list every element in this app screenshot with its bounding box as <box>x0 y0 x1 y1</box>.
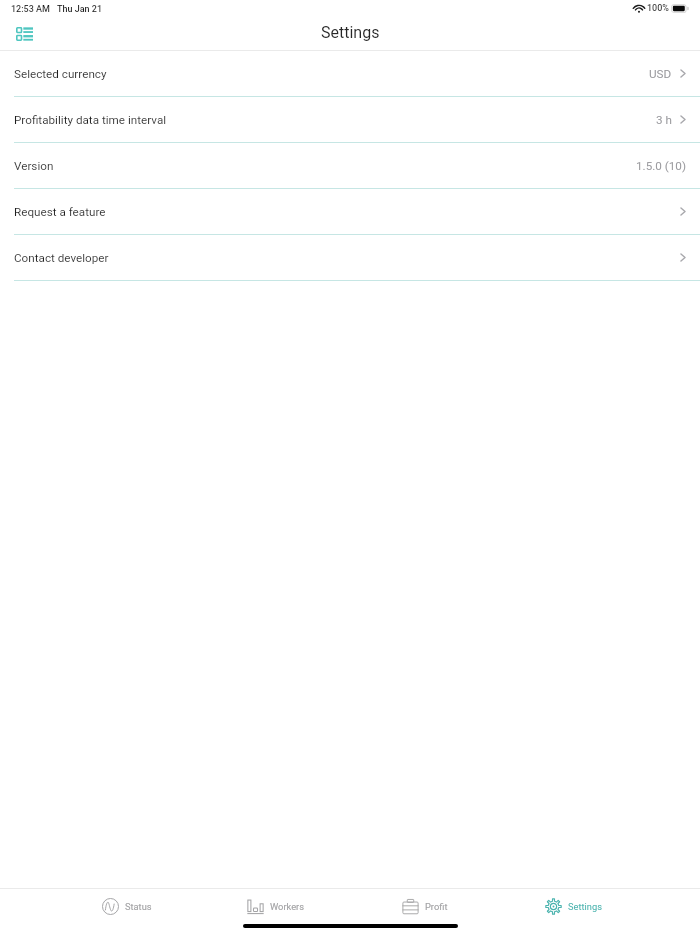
staticText: 1.5.0 (10) <box>636 159 686 173</box>
button[interactable]: Profit <box>350 889 499 924</box>
staticText: Settings <box>321 23 380 42</box>
button[interactable]: Status <box>52 889 201 924</box>
staticText: Workers <box>270 901 305 912</box>
staticText: Profitability data time interval <box>14 113 167 127</box>
button[interactable]: List view <box>8 20 40 47</box>
button[interactable]: Contact developer <box>0 235 700 281</box>
staticText: USD <box>649 67 672 81</box>
staticText: Selected currency <box>14 67 107 81</box>
button[interactable]: Version <box>0 143 700 189</box>
staticText: Settings <box>568 901 602 912</box>
button[interactable]: Selected currency <box>0 51 700 97</box>
staticText: Contact developer <box>14 251 109 265</box>
button[interactable]: Request a feature <box>0 189 700 235</box>
staticText: 3 h <box>656 113 672 127</box>
staticText: Request a feature <box>14 205 106 219</box>
button[interactable]: Settings <box>499 889 648 924</box>
staticText: 12:53 AM <box>11 4 50 15</box>
button[interactable]: Profitability data time interval <box>0 97 700 143</box>
staticText: Status <box>125 901 152 912</box>
staticText: Profit <box>425 901 448 912</box>
button[interactable]: Workers <box>201 889 350 924</box>
staticText: Thu Jan 21 <box>57 4 103 15</box>
staticText: 100% <box>647 3 669 14</box>
staticText: Version <box>14 159 54 173</box>
